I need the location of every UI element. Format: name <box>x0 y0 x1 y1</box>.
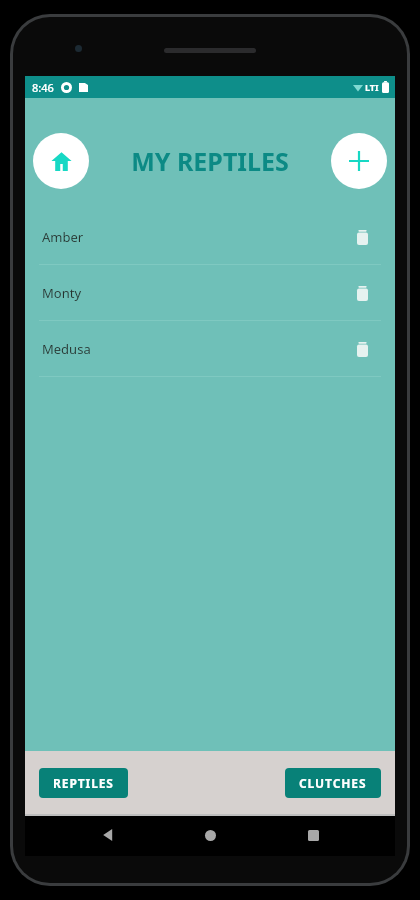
button[interactable]: CLUTCHES <box>285 768 381 798</box>
staticText: Monty <box>42 284 82 302</box>
staticText: Amber <box>42 228 84 246</box>
staticText: Medusa <box>42 340 91 358</box>
staticText: 8:46 <box>32 80 54 95</box>
button[interactable]: Amber <box>25 209 395 264</box>
staticText: REPTILES <box>53 775 114 791</box>
button[interactable]: Home <box>33 133 89 189</box>
button[interactable]: Medusa <box>25 321 395 376</box>
button[interactable]: Add reptile <box>331 133 387 189</box>
button[interactable]: REPTILES <box>39 768 128 798</box>
button[interactable]: Delete Monty <box>349 280 375 306</box>
button[interactable]: Monty <box>25 265 395 320</box>
button[interactable]: Delete Amber <box>349 224 375 250</box>
staticText: LTI <box>365 81 379 93</box>
staticText: MY REPTILES <box>131 144 289 178</box>
staticText: CLUTCHES <box>299 775 367 791</box>
button[interactable]: Recents <box>293 815 333 855</box>
button[interactable]: Back <box>88 815 128 855</box>
button[interactable]: Delete Medusa <box>349 336 375 362</box>
button[interactable]: Home <box>190 815 230 855</box>
